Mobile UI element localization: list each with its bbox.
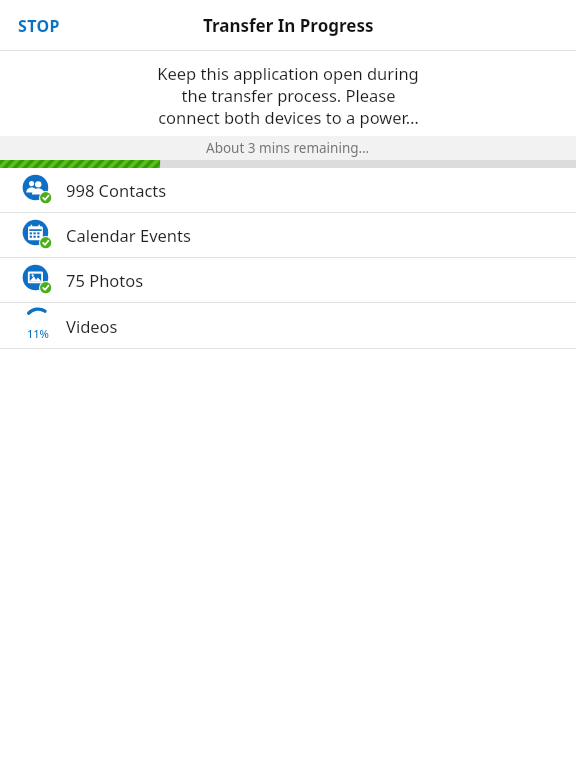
staticText: the transfer process. Please (181, 84, 396, 106)
button[interactable]: 998 Contacts (0, 168, 576, 212)
button[interactable]: Calendar Events (0, 213, 576, 257)
button[interactable]: Videos transfer 11 percent (0, 303, 576, 348)
other: 75 Photos (22, 264, 54, 296)
staticText: Transfer In Progress (203, 14, 374, 37)
other: Videos transfer 11 percent (16, 304, 60, 348)
staticText: connect both devices to a power… (158, 106, 419, 128)
button[interactable]: STOP (16, 9, 62, 43)
button[interactable]: 75 Photos (0, 258, 576, 302)
staticText: Videos (66, 315, 118, 337)
staticText: Keep this application open during (157, 62, 419, 84)
other: Calendar Events (22, 219, 54, 251)
staticText: About 3 mins remaining… (206, 139, 370, 157)
staticText: STOP (18, 15, 60, 37)
staticText: Calendar Events (66, 224, 191, 246)
staticText: 998 Contacts (66, 179, 167, 201)
staticText: 11% (27, 326, 49, 341)
other: 998 Contacts (22, 174, 54, 206)
staticText: 75 Photos (66, 269, 144, 291)
